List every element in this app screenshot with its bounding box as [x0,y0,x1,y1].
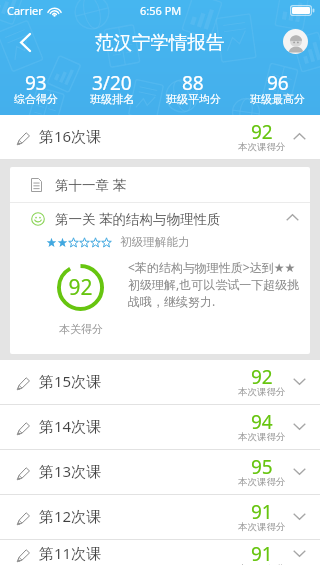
button[interactable]: 3/20 [72,69,151,109]
staticText: 第一关 苯的结构与物理性质 [55,210,221,228]
staticText: 第11次课 [39,543,102,563]
staticText: 本次课得分 [238,476,286,488]
button[interactable]: Profile [283,29,308,54]
staticText: 93 [25,70,47,96]
button[interactable]: 第12次课 [0,495,320,540]
button[interactable]: 第13次课 [0,450,320,495]
staticText: 本次课得分 [238,431,286,443]
staticText: 91 [251,499,273,525]
button[interactable]: 第一关 苯的结构与物理性质 [31,203,299,234]
staticText: 92 [68,273,93,302]
staticText: 班级排名 [90,92,134,106]
button[interactable]: Back [0,20,50,64]
staticText: 92 [251,364,273,390]
staticText: 第13次课 [39,461,102,481]
staticText: 95 [251,454,273,480]
staticText: 94 [251,409,273,435]
staticText: 班级平均分 [166,92,221,106]
staticText: 88 [182,70,204,96]
staticText: 本关得分 [59,322,103,336]
staticText: <苯的结构与物理性质>达到★★初级理解,也可以尝试一下超级挑战哦，继续努力. [128,259,304,309]
staticText: Carrier [7,3,43,18]
staticText: 班级最高分 [250,92,305,106]
staticText: 范汉宁学情报告 [95,31,225,54]
staticText: 96 [267,70,289,96]
button[interactable]: 88 [151,69,235,109]
staticText: 本次课得分 [238,521,286,533]
button[interactable]: 第11次课 [0,540,320,568]
staticText: 本次课得分 [238,386,286,398]
button[interactable]: 第16次课 [0,115,320,160]
button[interactable]: 第15次课 [0,360,320,405]
staticText: 第12次课 [39,506,102,526]
staticText: 第14次课 [39,416,102,436]
staticText: 92 [251,119,273,145]
staticText: 3/20 [92,70,132,96]
button[interactable]: 第14次课 [0,405,320,450]
staticText: 本次课得分 [238,563,286,565]
staticText: 第16次课 [39,126,102,146]
staticText: 第十一章 苯 [55,176,127,194]
staticText: 本次课得分 [238,141,286,153]
button[interactable]: 96 [235,69,320,109]
button[interactable]: 93 [0,69,72,109]
staticText: 综合得分 [14,92,58,106]
staticText: 初级理解能力 [120,235,190,250]
staticText: 第15次课 [39,371,102,391]
staticText: 91 [251,541,273,567]
staticText: 6:56 PM [140,3,182,18]
